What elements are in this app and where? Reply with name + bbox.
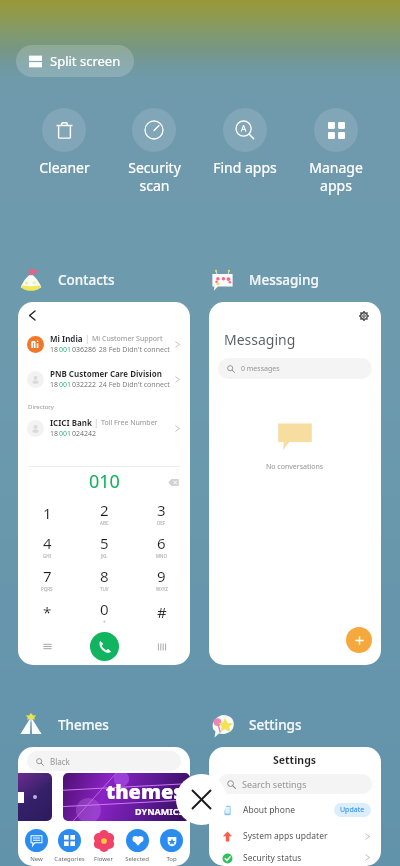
staticText: 6 bbox=[157, 533, 166, 553]
staticText: DEF bbox=[157, 520, 166, 526]
button[interactable]: Security status bbox=[209, 849, 381, 866]
staticText: Messaging bbox=[249, 271, 319, 289]
button[interactable]: 2 bbox=[76, 496, 133, 529]
staticText: 036286 bbox=[72, 345, 97, 355]
button[interactable]: Settings bbox=[356, 308, 372, 324]
staticText: 3 bbox=[157, 500, 166, 520]
staticText: 18 bbox=[50, 380, 59, 390]
staticText: System apps updater bbox=[243, 830, 364, 842]
staticText: Manage apps bbox=[309, 158, 363, 195]
button[interactable] bbox=[18, 773, 52, 821]
button[interactable]: Search settings bbox=[218, 774, 372, 794]
staticText: 7 bbox=[43, 566, 52, 586]
staticText: Settings bbox=[249, 716, 302, 734]
button[interactable]: Manage apps bbox=[290, 108, 381, 195]
button[interactable]: About phone bbox=[209, 797, 381, 823]
staticText: 18 bbox=[50, 345, 59, 355]
staticText: | bbox=[83, 333, 92, 344]
button[interactable]: Backspace bbox=[165, 474, 181, 490]
button[interactable]: Settings bbox=[209, 302, 381, 665]
button[interactable]: Update bbox=[334, 803, 371, 817]
staticText: 2 bbox=[100, 500, 109, 520]
staticText: Search settings bbox=[242, 778, 307, 790]
staticText: Black bbox=[50, 756, 70, 767]
staticText: Split screen bbox=[50, 52, 121, 70]
staticText: Toll Free Number bbox=[101, 418, 158, 428]
staticText: 18 bbox=[50, 429, 59, 439]
staticText: 001 bbox=[59, 345, 72, 355]
button[interactable]: * bbox=[18, 595, 76, 628]
staticText: Categories bbox=[54, 855, 85, 863]
staticText: 032222 bbox=[72, 380, 97, 390]
staticText: + bbox=[103, 619, 106, 625]
button[interactable]: # bbox=[133, 595, 190, 628]
staticText: Mi Customer Support bbox=[92, 334, 163, 344]
staticText: 24 Feb Didn't connect bbox=[97, 380, 170, 390]
button[interactable]: ICICI Bank bbox=[18, 417, 190, 439]
button[interactable]: Flower bbox=[86, 829, 120, 863]
button[interactable]: Top bbox=[154, 829, 188, 863]
button[interactable]: 8 bbox=[76, 562, 133, 595]
staticText: Update bbox=[340, 805, 365, 815]
button[interactable]: Black bbox=[18, 747, 190, 866]
staticText: 4 bbox=[43, 533, 52, 553]
button[interactable]: Call bbox=[90, 632, 119, 661]
staticText: TUV bbox=[100, 586, 109, 592]
button[interactable]: 0 messages bbox=[218, 358, 372, 379]
staticText: New bbox=[30, 855, 43, 863]
button[interactable]: themes bbox=[63, 773, 190, 821]
button[interactable]: System apps updater bbox=[209, 823, 381, 849]
button[interactable]: PNB Customer Care Division bbox=[18, 368, 190, 390]
button[interactable]: Back bbox=[23, 306, 41, 324]
staticText: 010 bbox=[89, 469, 120, 494]
staticText: Themes bbox=[58, 716, 109, 734]
button[interactable]: Categories bbox=[53, 829, 86, 863]
staticText: themes bbox=[106, 778, 184, 805]
staticText: JKL bbox=[101, 553, 108, 559]
staticText: 001 bbox=[59, 429, 72, 439]
staticText: DYNAMICS bbox=[135, 805, 184, 817]
button[interactable]: Security scan bbox=[109, 108, 199, 195]
staticText: 024242 bbox=[72, 429, 97, 439]
button[interactable]: Settings bbox=[209, 747, 381, 866]
button[interactable]: Selected bbox=[120, 829, 154, 863]
button[interactable]: Back bbox=[18, 302, 190, 665]
staticText: GHI bbox=[43, 553, 52, 559]
button[interactable]: Menu bbox=[18, 628, 76, 665]
button[interactable]: 0 bbox=[76, 595, 133, 628]
button[interactable]: Cleaner bbox=[19, 108, 109, 177]
staticText: 28 Feb Didn't connect bbox=[97, 345, 170, 355]
staticText: Messaging bbox=[224, 330, 296, 349]
button[interactable]: New message bbox=[346, 627, 372, 653]
staticText: # bbox=[157, 602, 167, 622]
button[interactable]: 9 bbox=[133, 562, 190, 595]
button[interactable]: Keypad bbox=[133, 628, 190, 665]
button[interactable]: Split screen bbox=[16, 45, 134, 77]
staticText: Contacts bbox=[58, 271, 115, 289]
button[interactable]: 1 bbox=[18, 496, 76, 529]
button[interactable]: 3 bbox=[133, 496, 190, 529]
button[interactable]: 6 bbox=[133, 529, 190, 562]
staticText: No conversations bbox=[266, 462, 324, 472]
button[interactable]: Mi India bbox=[18, 333, 190, 355]
button[interactable]: Close bbox=[176, 774, 227, 825]
staticText: Directory bbox=[28, 403, 54, 411]
button[interactable]: Black bbox=[27, 751, 181, 771]
button[interactable]: 5 bbox=[76, 529, 133, 562]
staticText: Mi India bbox=[50, 333, 83, 344]
staticText: Security scan bbox=[128, 158, 181, 195]
staticText: 0 bbox=[100, 599, 109, 619]
staticText: PNB Customer Care Division bbox=[50, 368, 162, 379]
button[interactable]: Find apps bbox=[199, 108, 290, 177]
staticText: 0 messages bbox=[241, 364, 280, 374]
staticText: ABC bbox=[100, 520, 109, 526]
button[interactable]: New bbox=[20, 829, 53, 863]
staticText: PQRS bbox=[41, 586, 53, 592]
button[interactable]: 4 bbox=[18, 529, 76, 562]
staticText: 001 bbox=[59, 380, 72, 390]
staticText: MNO bbox=[156, 553, 168, 559]
button[interactable]: 7 bbox=[18, 562, 76, 595]
staticText: About phone bbox=[243, 804, 334, 816]
staticText: 8 bbox=[100, 566, 109, 586]
staticText: 9 bbox=[157, 566, 166, 586]
